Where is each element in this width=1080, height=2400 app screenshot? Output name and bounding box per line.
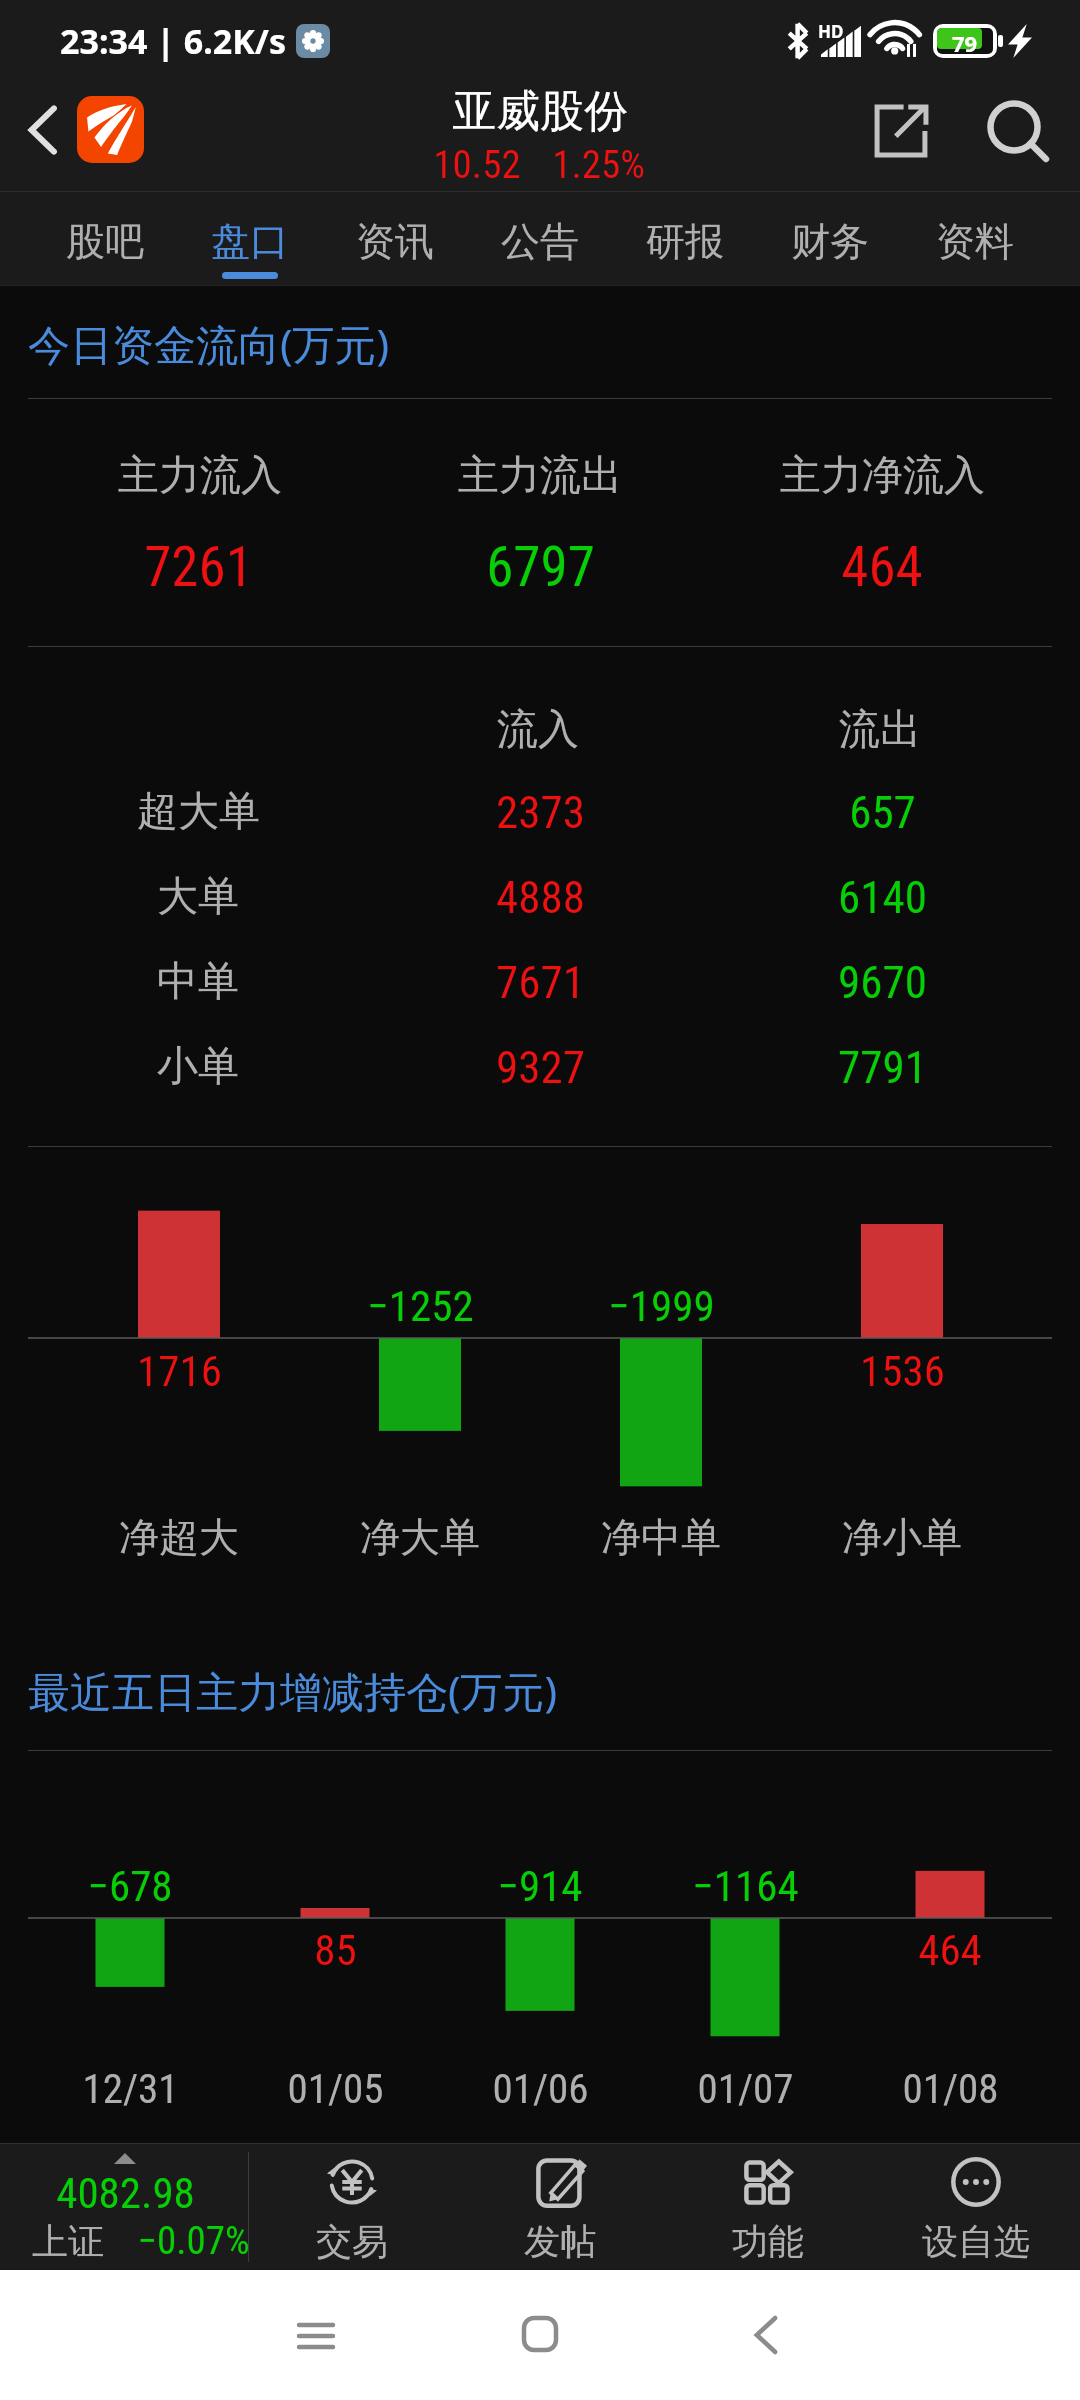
- staticText: 主力流出: [458, 450, 622, 502]
- button[interactable]: Five day position change bar chart: [0, 1756, 1080, 2136]
- staticText: 股吧: [66, 217, 144, 266]
- staticText: 盘口: [211, 217, 289, 266]
- staticText: 12/31: [82, 2065, 179, 2113]
- staticText: 上证: [32, 2219, 104, 2264]
- staticText: 4082.98: [56, 2168, 195, 2218]
- staticText: 7261: [144, 535, 253, 599]
- staticText: 大单: [157, 871, 239, 923]
- staticText: 流入: [497, 704, 579, 756]
- staticText: 主力流入: [118, 450, 282, 502]
- staticText: 主力净流入: [780, 450, 985, 502]
- staticText: 01/05: [287, 2065, 384, 2113]
- staticText: 1716: [137, 1346, 222, 1396]
- button[interactable]: 交易: [248, 2144, 456, 2270]
- staticText: 今日资金流向(万元): [28, 315, 390, 372]
- staticText: 2373: [496, 786, 585, 839]
- button[interactable]: 发帖: [456, 2144, 664, 2270]
- staticText: 净小单: [842, 1512, 962, 1562]
- staticText: 657: [849, 786, 916, 839]
- staticText: 464: [918, 1925, 982, 1975]
- staticText: 中单: [157, 956, 239, 1008]
- button[interactable]: 财务: [758, 192, 902, 286]
- button[interactable]: Recent apps: [266, 2286, 366, 2386]
- staticText: 01/07: [697, 2065, 794, 2113]
- staticText: 小单: [157, 1041, 239, 1093]
- button[interactable]: [0, 1640, 1080, 1740]
- button[interactable]: 公告: [468, 192, 612, 286]
- button[interactable]: 功能: [664, 2144, 872, 2270]
- button[interactable]: 盘口: [178, 192, 322, 286]
- button[interactable]: Back: [716, 2285, 816, 2385]
- button[interactable]: Home: [490, 2284, 590, 2384]
- staticText: 79: [952, 28, 978, 54]
- staticText: 交易: [316, 2219, 388, 2264]
- staticText: 7671: [496, 956, 585, 1009]
- button[interactable]: [0, 855, 1080, 939]
- staticText: 4888: [496, 871, 585, 924]
- staticText: 10.52: [433, 142, 521, 188]
- button[interactable]: [0, 2144, 248, 2270]
- button[interactable]: [0, 770, 1080, 854]
- button[interactable]: Net order-size bar chart: [0, 1150, 1080, 1580]
- staticText: −1164: [692, 1861, 799, 1911]
- button[interactable]: 股吧: [33, 192, 177, 286]
- button[interactable]: 设自选: [872, 2144, 1080, 2270]
- staticText: 01/06: [492, 2065, 589, 2113]
- staticText: 净超大: [119, 1512, 239, 1562]
- staticText: 6797: [486, 535, 595, 599]
- staticText: 资讯: [356, 217, 434, 266]
- staticText: 464: [841, 535, 923, 599]
- staticText: 9670: [838, 956, 927, 1009]
- staticText: HD: [818, 20, 844, 43]
- button[interactable]: 资讯: [323, 192, 467, 286]
- staticText: −0.07%: [137, 2218, 250, 2264]
- staticText: 85: [314, 1925, 357, 1975]
- staticText: 研报: [646, 217, 724, 266]
- button[interactable]: [0, 296, 1080, 392]
- staticText: 1.25%: [552, 142, 645, 188]
- staticText: 财务: [791, 217, 869, 266]
- staticText: 净中单: [601, 1512, 721, 1562]
- staticText: 公告: [501, 217, 579, 266]
- staticText: 流出: [839, 704, 921, 756]
- button[interactable]: [0, 940, 1080, 1024]
- button[interactable]: Share: [856, 79, 946, 183]
- staticText: −678: [87, 1861, 173, 1911]
- staticText: 亚威股份: [452, 84, 628, 139]
- button[interactable]: East Money: [77, 96, 144, 163]
- staticText: −914: [497, 1861, 583, 1911]
- staticText: 发帖: [524, 2219, 596, 2264]
- staticText: 最近五日主力增减持仓(万元): [28, 1662, 558, 1719]
- staticText: 净大单: [360, 1512, 480, 1562]
- staticText: 功能: [732, 2219, 804, 2264]
- staticText: 23:34 | 6.2K/s: [60, 18, 286, 64]
- button[interactable]: Back: [10, 78, 76, 182]
- staticText: 9327: [496, 1041, 585, 1094]
- staticText: 设自选: [922, 2219, 1030, 2264]
- button[interactable]: [0, 1025, 1080, 1109]
- button[interactable]: 资料: [903, 192, 1047, 286]
- button[interactable]: Search: [958, 78, 1070, 182]
- button[interactable]: [0, 410, 1080, 640]
- staticText: 6140: [838, 871, 927, 924]
- staticText: −1999: [608, 1281, 715, 1331]
- staticText: 7791: [838, 1041, 927, 1094]
- button[interactable]: 研报: [613, 192, 757, 286]
- staticText: −1252: [367, 1281, 474, 1331]
- staticText: 资料: [936, 217, 1014, 266]
- staticText: 超大单: [137, 786, 260, 838]
- staticText: 1536: [860, 1346, 945, 1396]
- staticText: 01/08: [902, 2065, 999, 2113]
